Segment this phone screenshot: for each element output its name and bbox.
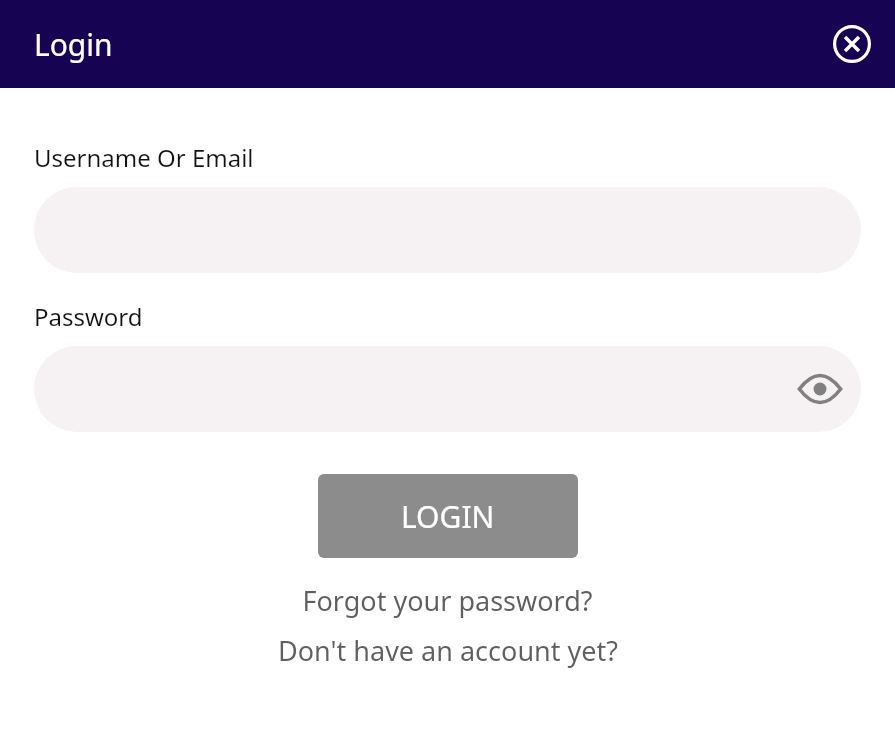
- button[interactable]: Don't have an account yet?: [0, 632, 895, 669]
- button[interactable]: LOGIN: [318, 474, 578, 558]
- staticText: Forgot your password?: [302, 582, 593, 619]
- staticText: Username Or Email: [34, 141, 254, 174]
- staticText: Password: [34, 300, 143, 333]
- staticText: Don't have an account yet?: [278, 632, 618, 669]
- staticText: Login: [34, 24, 113, 65]
- staticText: LOGIN: [401, 496, 495, 537]
- button[interactable]: Close: [828, 20, 876, 68]
- button[interactable]: Show password: [34, 346, 861, 432]
- button[interactable]: Show password: [796, 365, 844, 413]
- button[interactable]: Forgot your password?: [0, 582, 895, 619]
